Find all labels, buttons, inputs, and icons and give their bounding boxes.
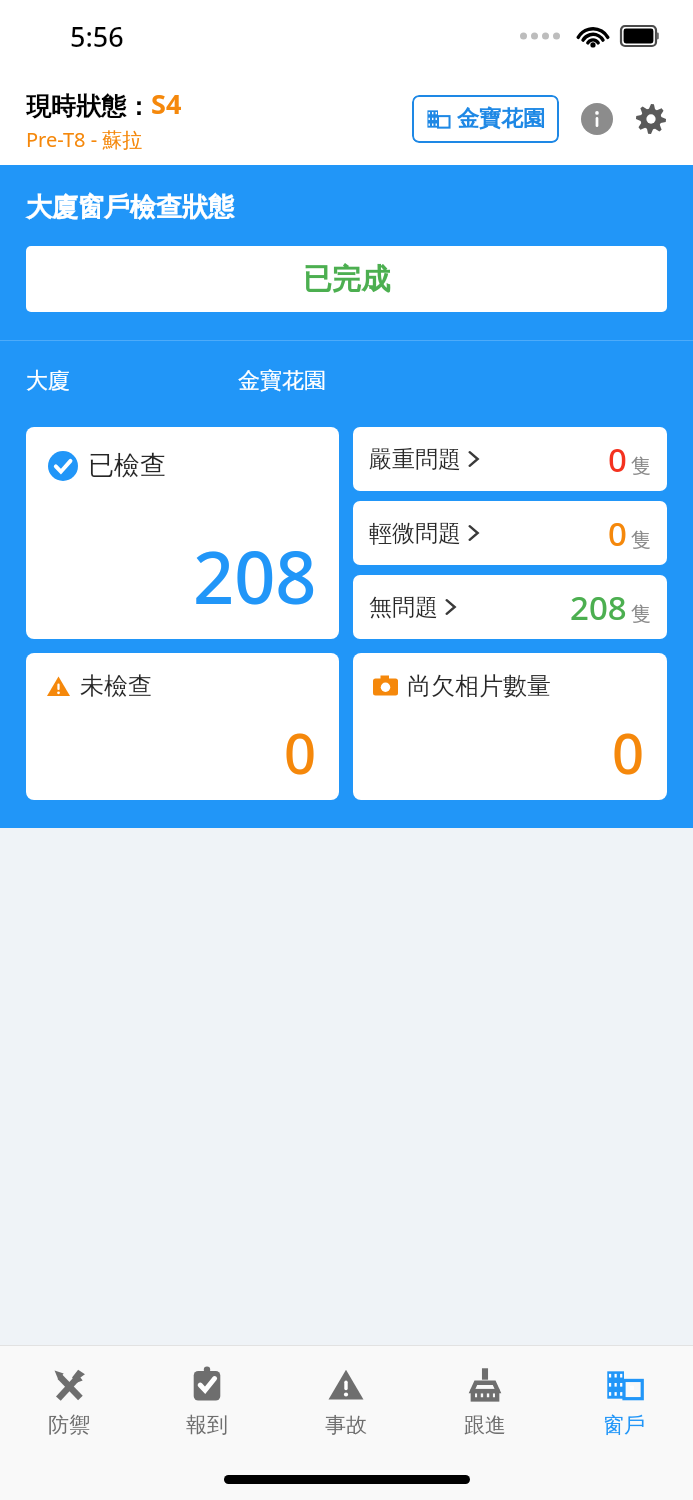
staticText: 未檢查 xyxy=(80,671,152,701)
button[interactable]: 輕微問題 xyxy=(353,501,667,565)
staticText: 0 xyxy=(608,511,627,556)
button[interactable]: 已完成 xyxy=(26,246,667,312)
staticText: 報到 xyxy=(186,1412,228,1438)
staticText: 窗戶 xyxy=(603,1412,645,1438)
staticText: 跟進 xyxy=(464,1412,506,1438)
button[interactable]: 報到 xyxy=(138,1346,276,1458)
button[interactable]: 已檢查 xyxy=(26,427,339,639)
staticText: 輕微問題 xyxy=(369,519,461,548)
staticText: 事故 xyxy=(325,1412,367,1438)
staticText: 無問題 xyxy=(369,593,438,622)
staticText: 嚴重問題 xyxy=(369,445,461,474)
staticText: 大廈 xyxy=(26,367,70,395)
staticText: 隻 xyxy=(631,454,651,479)
staticText: Pre-T8 - 蘇拉 xyxy=(26,126,143,153)
button[interactable]: Settings xyxy=(629,97,673,141)
button[interactable]: 無問題 xyxy=(353,575,667,639)
staticText: 0 xyxy=(608,437,627,482)
staticText: 隻 xyxy=(631,602,651,627)
button[interactable]: 防禦 xyxy=(0,1346,138,1458)
button[interactable]: 嚴重問題 xyxy=(353,427,667,491)
button[interactable]: 金寶花園 xyxy=(412,95,559,143)
staticText: 隻 xyxy=(631,528,651,553)
button[interactable]: 尚欠相片數量 xyxy=(353,653,667,800)
staticText: 金寶花園 xyxy=(457,105,545,133)
button[interactable]: 未檢查 xyxy=(26,653,339,800)
staticText: S4 xyxy=(151,85,182,122)
button[interactable]: 事故 xyxy=(276,1346,415,1458)
staticText: 尚欠相片數量 xyxy=(407,671,551,701)
staticText: 大廈窗戶檢查狀態 xyxy=(26,191,234,224)
staticText: 現時狀態： xyxy=(26,91,151,122)
staticText: 208 xyxy=(570,585,627,630)
button[interactable]: 跟進 xyxy=(415,1346,554,1458)
button[interactable]: 窗戶 xyxy=(554,1346,693,1458)
button[interactable]: Information xyxy=(577,99,617,139)
staticText: 金寶花園 xyxy=(238,367,326,395)
staticText: 已檢查 xyxy=(88,449,166,482)
staticText: 0 xyxy=(612,714,645,790)
staticText: 5:56 xyxy=(70,18,124,55)
staticText: 0 xyxy=(284,714,317,790)
staticText: 208 xyxy=(193,527,317,625)
staticText: 防禦 xyxy=(48,1412,90,1438)
staticText: 已完成 xyxy=(303,261,390,298)
